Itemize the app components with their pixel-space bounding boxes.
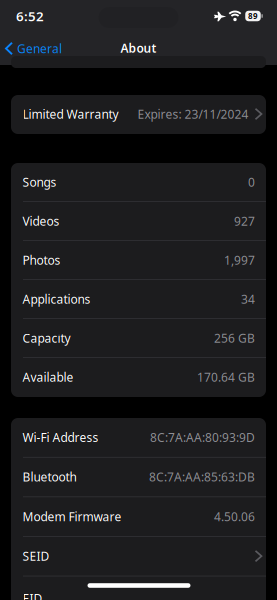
staticText: Videos: [22, 213, 59, 229]
staticText: 170.64 GB: [197, 369, 255, 385]
staticText: 927: [234, 213, 255, 229]
staticText: 89: [248, 11, 258, 21]
staticText: 256 GB: [214, 330, 255, 346]
staticText: Photos: [22, 252, 60, 268]
staticText: 34: [241, 291, 255, 307]
staticText: Limited Warranty: [22, 106, 118, 122]
button[interactable]: SEID: [11, 537, 266, 576]
staticText: 6:52: [16, 7, 44, 25]
staticText: Capacity: [22, 330, 70, 346]
staticText: Available: [22, 369, 73, 385]
button[interactable]: EID: [11, 576, 266, 600]
staticText: Songs: [22, 174, 56, 190]
staticText: 0: [248, 174, 255, 190]
staticText: 8C:7A:AA:85:63:DB: [149, 469, 255, 485]
staticText: 8C:7A:AA:80:93:9D: [150, 429, 255, 445]
staticText: General: [17, 40, 62, 56]
staticText: Wi-Fi Address: [22, 429, 98, 445]
staticText: SEID: [22, 548, 49, 564]
staticText: 4.50.06: [214, 508, 255, 524]
button[interactable]: General: [6, 34, 62, 62]
staticText: EID: [22, 590, 42, 600]
staticText: Applications: [22, 291, 90, 307]
staticText: 1,997: [224, 252, 255, 268]
staticText: About: [120, 40, 156, 56]
staticText: Expires: 23/11/2024: [137, 106, 248, 122]
staticText: Modem Firmware: [22, 508, 121, 524]
button[interactable]: Limited Warranty: [11, 95, 266, 134]
staticText: Bluetooth: [22, 469, 76, 485]
